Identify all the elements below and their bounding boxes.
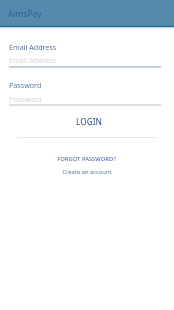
staticText: Create an account [62, 168, 112, 176]
button[interactable]: Create an account [37, 166, 137, 178]
staticText: FORGOT PASSWORD? [57, 155, 116, 163]
staticText: Password [9, 94, 42, 104]
button[interactable]: LOGIN [19, 112, 159, 130]
staticText: Email Address [9, 42, 57, 52]
staticText: Password [9, 80, 42, 90]
button[interactable]: Password [9, 80, 42, 90]
button[interactable]: Email Address [9, 42, 57, 52]
staticText: LOGIN [76, 116, 102, 127]
button[interactable]: FORGOT PASSWORD? [36, 153, 136, 165]
staticText: Email Address [9, 55, 57, 65]
staticText: AimsPay [8, 8, 42, 19]
